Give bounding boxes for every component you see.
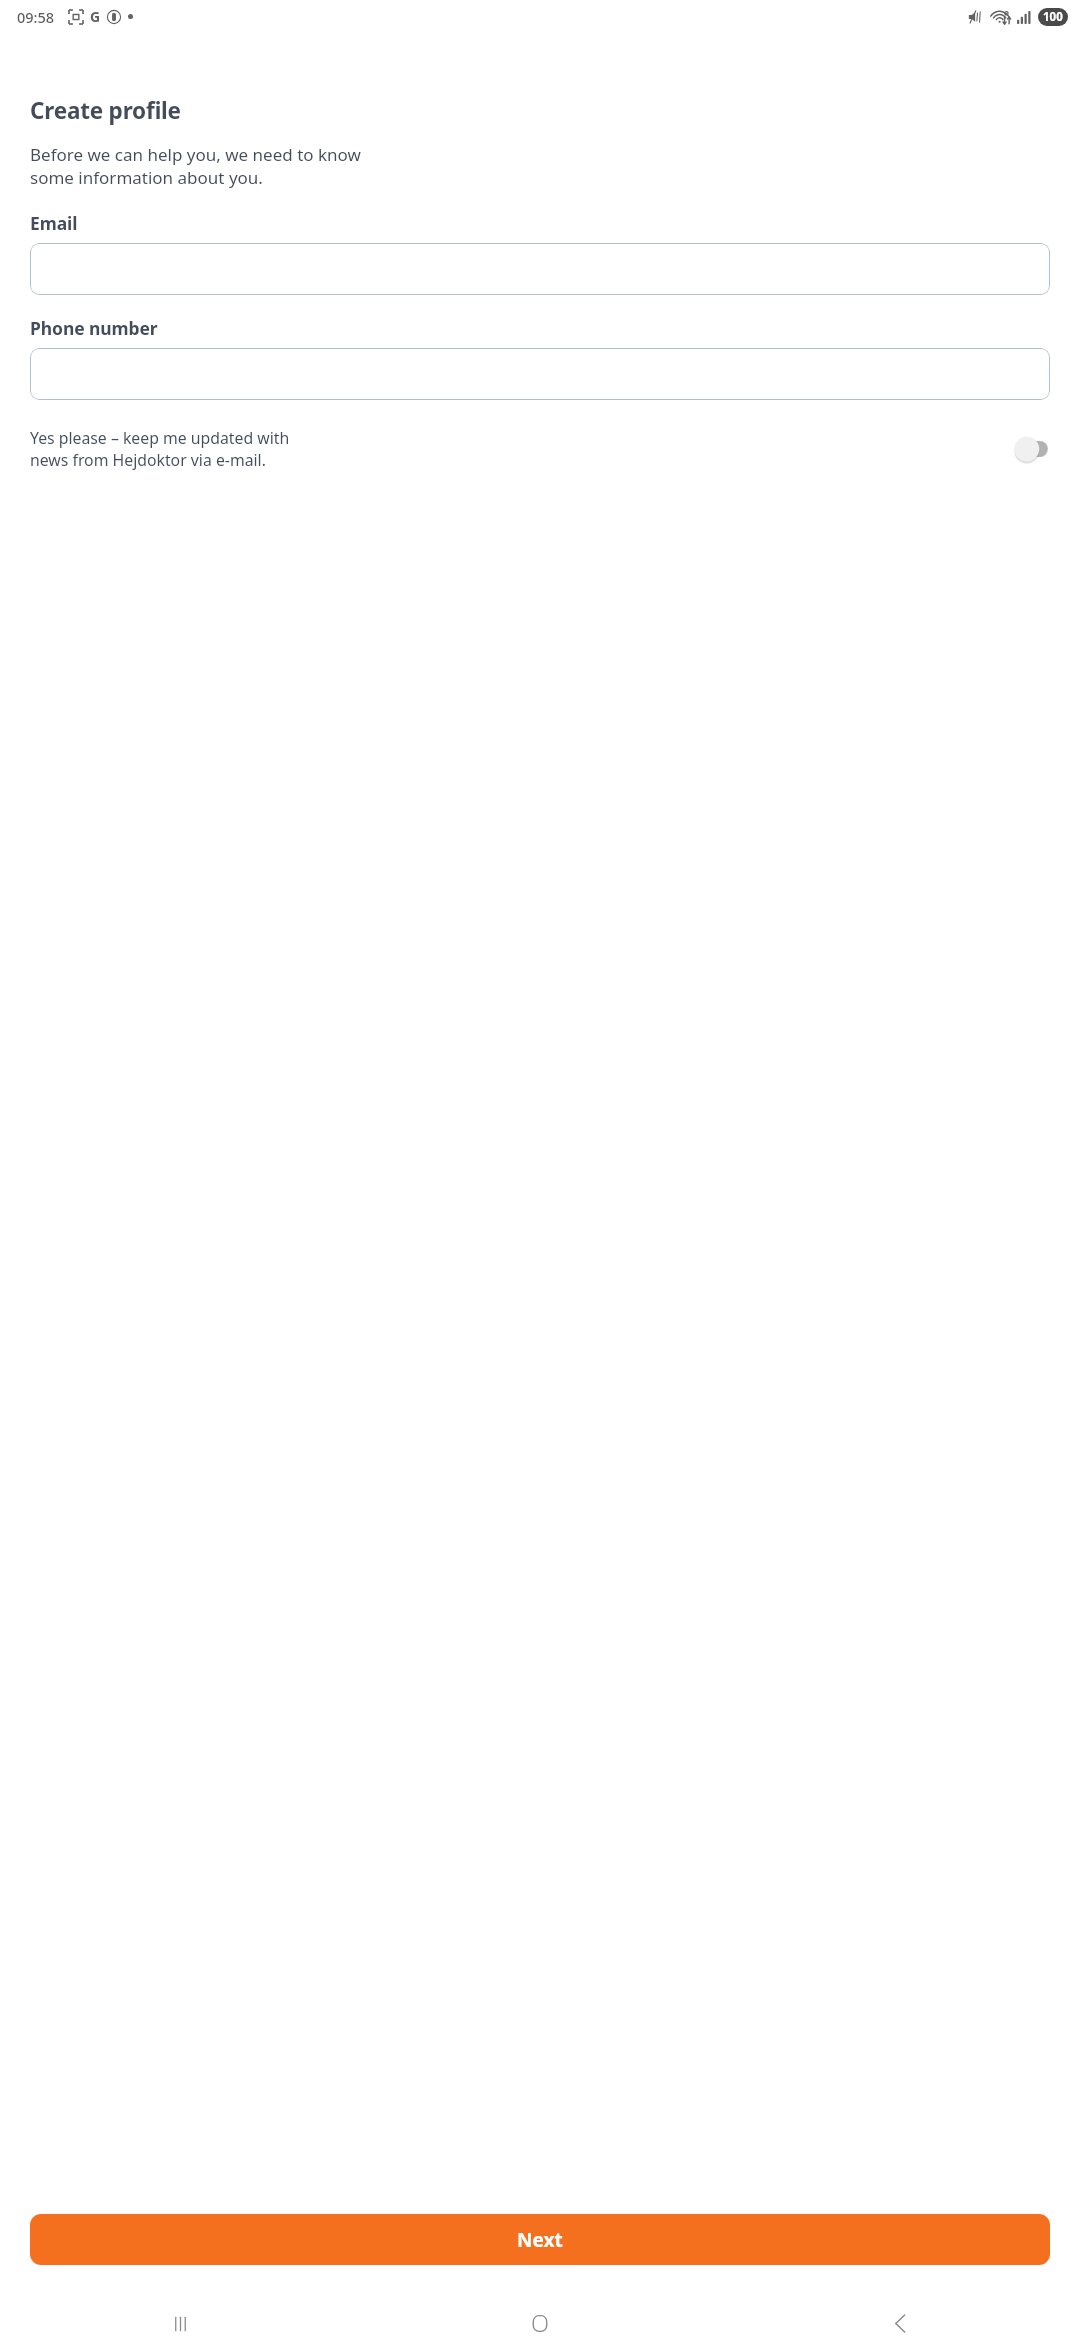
- staticText: Before we can help you, we need to know …: [30, 143, 361, 189]
- staticText: Next: [517, 2227, 563, 2253]
- button[interactable]: Next: [30, 2214, 1050, 2265]
- staticText: 09:58: [17, 7, 55, 27]
- button[interactable]: [30, 348, 1050, 400]
- button[interactable]: [30, 243, 1050, 295]
- button[interactable]: Newsletter subscription toggle, off: [1010, 436, 1054, 462]
- button[interactable]: Back: [720, 2307, 1080, 2340]
- staticText: Create profile: [30, 95, 181, 126]
- staticText: Email: [30, 211, 78, 235]
- button[interactable]: Home: [360, 2307, 720, 2340]
- button[interactable]: Recent apps: [0, 2307, 360, 2340]
- staticText: Phone number: [30, 316, 158, 340]
- staticText: 100: [1043, 9, 1063, 25]
- staticText: G: [90, 7, 101, 26]
- staticText: Yes please – keep me updated with news f…: [30, 427, 1000, 471]
